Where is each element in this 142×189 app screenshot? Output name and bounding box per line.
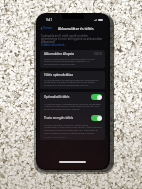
staticText: Akkumulátor állapota [44, 52, 74, 56]
button[interactable]: Töltés optimalizálása [44, 73, 102, 77]
staticText: Vissza [43, 26, 52, 30]
button[interactable]: Toggle [91, 115, 102, 121]
staticText: Az akkumulátor elhasználódásának csökken… [44, 78, 102, 87]
button[interactable]: További információ… [41, 43, 67, 47]
button[interactable]: További információ… [44, 135, 68, 138]
staticText: Töltés optimalizálása [44, 73, 73, 77]
staticText: Akkumulátor és töltés [58, 26, 94, 30]
button[interactable]: Back [40, 26, 52, 30]
button[interactable]: Tiszta energiás töltés [44, 115, 102, 121]
button[interactable]: Optimalizált töltés [44, 94, 102, 100]
staticText: 9:41 [46, 18, 53, 22]
button[interactable]: Akkumulátor állapota [44, 52, 102, 56]
staticText: Optimalizált töltés [44, 95, 70, 99]
staticText: Tiszta energiás töltés [44, 116, 74, 120]
staticText: 100 % [94, 52, 102, 56]
staticText: Tudnivalók arról, mitől romlik a telefon… [41, 34, 104, 43]
button[interactable]: Toggle [91, 94, 102, 100]
staticText: Amikor elérhető, a telefon megpróbálja c… [44, 123, 102, 135]
staticText: Ennek a készüléknek az akkumulátora a gy… [44, 57, 102, 66]
staticText: Az akkumulátor öregedésének lassítása ér… [44, 102, 102, 111]
other: Back [40, 27, 43, 30]
